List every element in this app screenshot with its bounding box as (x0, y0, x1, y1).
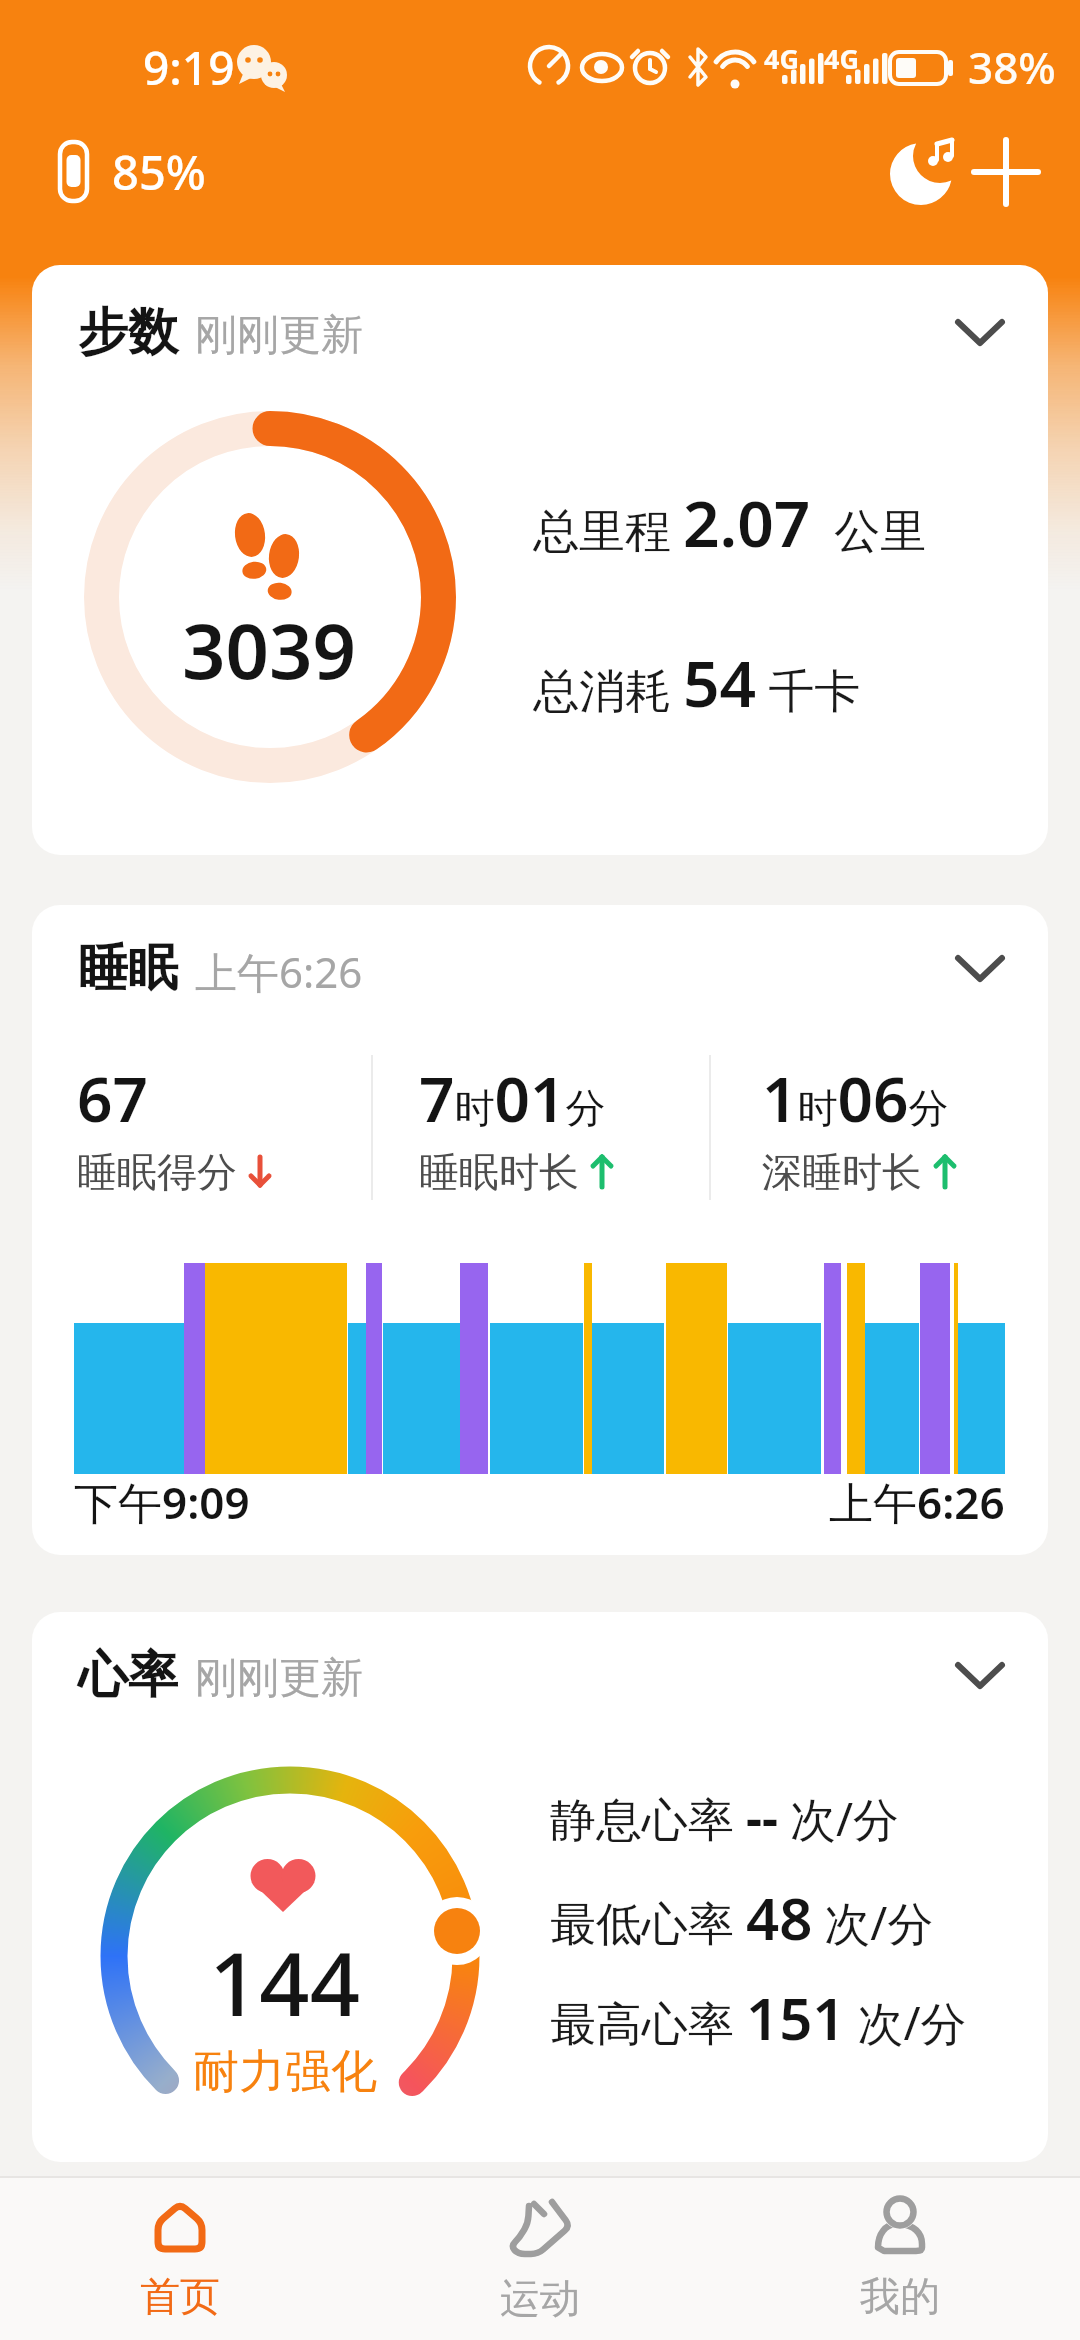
staticText: 深睡时长 (762, 1147, 922, 1197)
staticText: 静息心率 -- 次/分 (550, 1783, 900, 1851)
staticText: 1时06分 (762, 1056, 949, 1140)
staticText: 7时01分 (419, 1056, 606, 1140)
button[interactable]: 我的 (720, 2178, 1080, 2340)
staticText: 85% (112, 140, 206, 204)
staticText: 38% (968, 37, 1056, 97)
staticText: 9:19 (143, 36, 235, 99)
staticText: 67 (77, 1056, 148, 1140)
staticText: 3039 (182, 598, 356, 702)
button[interactable] (972, 138, 1040, 206)
staticText: 上午6:26 (829, 1472, 1005, 1532)
staticText: 睡眠时长 (419, 1147, 579, 1197)
button[interactable]: 步数 (32, 265, 1048, 855)
button[interactable] (884, 134, 960, 210)
staticText: 运动 (500, 2273, 580, 2323)
staticText: 耐力强化 (193, 2043, 377, 2101)
staticText: 睡眠得分 (77, 1147, 237, 1197)
button[interactable] (945, 1640, 1015, 1710)
staticText: 步数 (78, 301, 178, 364)
staticText: 刚刚更新 (195, 1652, 363, 1705)
staticText: 我的 (860, 2271, 940, 2321)
button[interactable]: 85% (40, 130, 300, 214)
staticText: 下午9:09 (74, 1472, 250, 1532)
staticText: 首页 (140, 2271, 220, 2321)
staticText: 4G (764, 40, 799, 77)
button[interactable]: 睡眠 (32, 905, 1048, 1555)
staticText: 睡眠 (78, 937, 178, 1000)
staticText: 4G (824, 40, 859, 77)
button[interactable]: 心率 (32, 1612, 1048, 2162)
button[interactable] (945, 933, 1015, 1003)
button[interactable]: 运动 (360, 2178, 720, 2340)
button[interactable] (945, 297, 1015, 367)
staticText: 144 (209, 1922, 361, 2042)
button[interactable]: 首页 (0, 2178, 360, 2340)
staticText: 最高心率 151 次/分 (550, 1978, 967, 2057)
staticText: 心率 (78, 1644, 178, 1707)
staticText: 总消耗 54 千卡 (533, 639, 861, 726)
staticText: 上午6:26 (195, 943, 363, 1000)
staticText: 刚刚更新 (195, 309, 363, 362)
staticText: 总里程 2.07 公里 (533, 479, 927, 566)
staticText: 最低心率 48 次/分 (550, 1878, 934, 1957)
